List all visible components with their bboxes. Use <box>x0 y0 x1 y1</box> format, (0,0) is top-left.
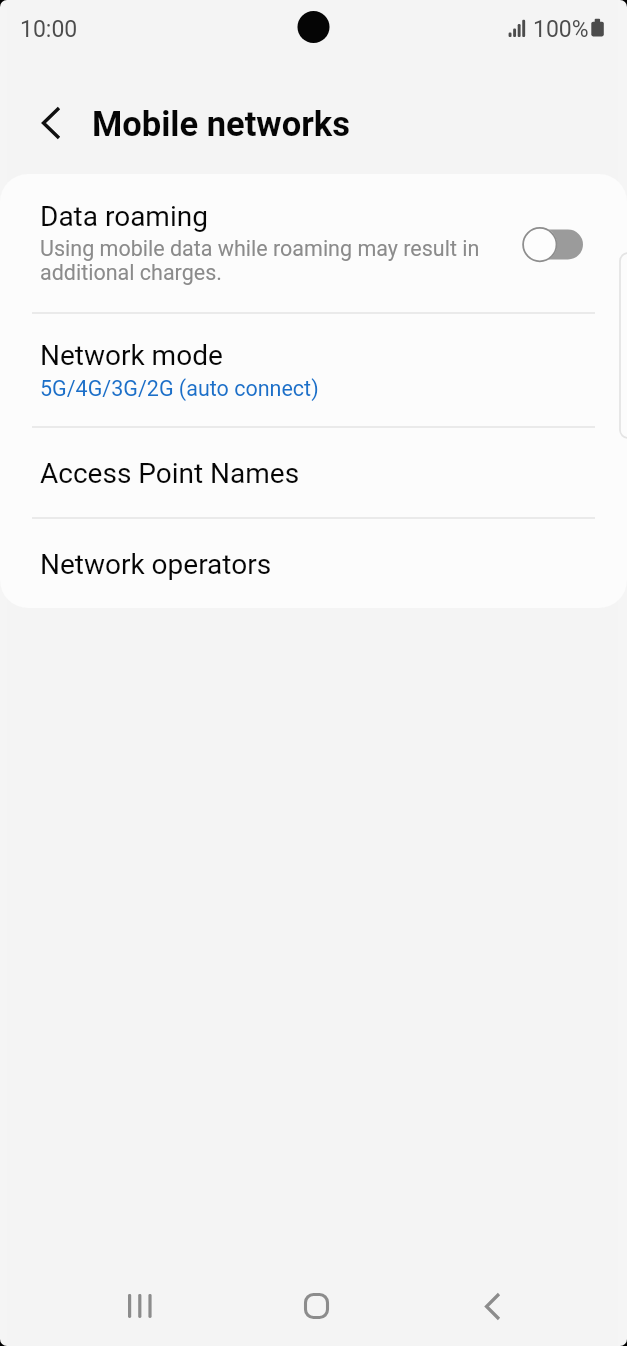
staticText: Data roaming <box>40 200 208 233</box>
staticText: Network operators <box>40 548 272 581</box>
staticText: Network mode <box>40 339 223 372</box>
button[interactable]: Network operators <box>0 517 627 608</box>
staticText: Mobile networks <box>92 104 350 144</box>
button[interactable]: Recent apps <box>100 1266 180 1346</box>
staticText: Using mobile data while roaming may resu… <box>40 237 480 285</box>
staticText: Access Point Names <box>40 457 300 490</box>
button[interactable]: Access Point Names <box>0 426 627 517</box>
button[interactable]: Data roaming <box>0 174 627 312</box>
button[interactable]: Network mode <box>0 312 627 426</box>
button[interactable]: Navigate up <box>20 95 82 151</box>
staticText: 100% <box>533 16 589 43</box>
button[interactable]: Data roaming <box>518 224 594 270</box>
staticText: 10:00 <box>20 16 78 43</box>
staticText: 5G/4G/3G/2G (auto connect) <box>40 376 319 401</box>
button[interactable]: Back <box>452 1266 532 1346</box>
button[interactable]: Home <box>276 1266 356 1346</box>
